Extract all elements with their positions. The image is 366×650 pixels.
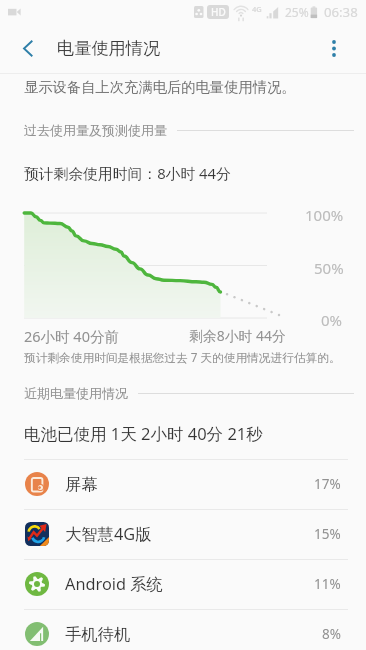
staticText: 4G — [252, 4, 262, 14]
button[interactable]: 屏幕 — [0, 459, 366, 509]
staticText: 15% — [314, 525, 341, 543]
button[interactable]: More options — [310, 24, 357, 73]
staticText: 06:38 — [324, 3, 358, 21]
staticText: 预计剩余使用时间是根据您过去 7 天的使用情况进行估算的。 — [24, 349, 341, 365]
staticText: 50% — [314, 258, 344, 278]
staticText: HD — [211, 5, 226, 19]
button[interactable]: Android 系统 — [0, 559, 366, 609]
staticText: 17% — [314, 475, 341, 493]
staticText: 25% — [285, 4, 309, 20]
staticText: 11% — [314, 575, 341, 593]
staticText: 26小时 40分前 — [24, 326, 119, 346]
staticText: 近期电量使用情况 — [24, 385, 128, 401]
staticText: 电量使用情况 — [57, 37, 161, 59]
staticText: 手机待机 — [65, 624, 131, 645]
staticText: 大智慧4G版 — [65, 523, 152, 545]
staticText: 屏幕 — [65, 474, 98, 495]
button[interactable]: 大智慧4G版 — [0, 509, 366, 559]
staticText: 0% — [321, 310, 343, 330]
staticText: 显示设备自上次充满电后的电量使用情况。 — [24, 78, 296, 96]
button[interactable]: 手机待机 — [0, 609, 366, 650]
staticText: 过去使用量及预测使用量 — [24, 122, 167, 138]
button[interactable]: Back — [4, 24, 52, 73]
staticText: 剩余8小时 44分 — [189, 326, 286, 345]
staticText: 100% — [305, 205, 344, 225]
staticText: 电池已使用 1天 2小时 40分 21秒 — [24, 422, 263, 445]
staticText: 预计剩余使用时间：8小时 44分 — [24, 163, 231, 183]
staticText: 8% — [322, 625, 341, 643]
staticText: Android 系统 — [65, 573, 163, 595]
